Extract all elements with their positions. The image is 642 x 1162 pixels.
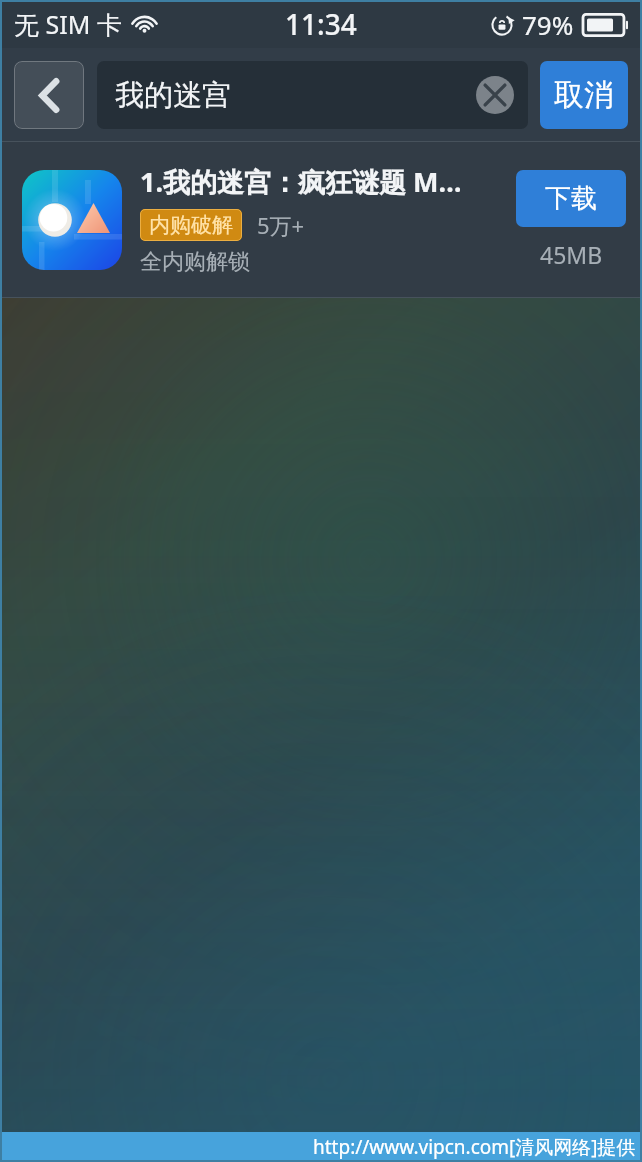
- button[interactable]: 取消: [540, 61, 628, 129]
- staticText: 11:34: [285, 5, 357, 43]
- button[interactable]: Clear text: [475, 75, 515, 115]
- button[interactable]: Back: [14, 61, 84, 129]
- staticText: 5万+: [257, 210, 305, 240]
- staticText: 取消: [554, 76, 614, 114]
- button[interactable]: 1.我的迷宫：疯狂谜题 M…: [0, 142, 642, 297]
- staticText: 内购破解: [149, 212, 233, 238]
- staticText: 下载: [545, 182, 597, 215]
- staticText: 全内购解锁: [140, 248, 250, 276]
- button[interactable]: 我的迷宫: [97, 61, 528, 129]
- staticText: 1.我的迷宫：疯狂谜题 M…: [140, 163, 462, 200]
- staticText: 无 SIM 卡: [14, 7, 122, 41]
- staticText: http://www.vipcn.com[清风网络]提供: [313, 1134, 636, 1160]
- staticText: 我的迷宫: [115, 77, 231, 114]
- staticText: 79%: [522, 7, 574, 42]
- staticText: 45MB: [540, 239, 603, 270]
- button[interactable]: 下载: [516, 170, 626, 227]
